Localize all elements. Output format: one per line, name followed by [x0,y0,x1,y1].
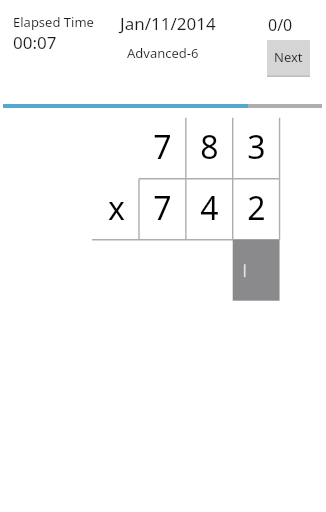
staticText: x [108,186,125,230]
staticText: Elapsed Time [13,13,94,31]
staticText: Advanced-6 [127,44,199,62]
button[interactable]: 3 [233,116,280,177]
button[interactable]: 8 [186,116,233,177]
button[interactable]: 2 [233,177,280,238]
staticText: 2 [247,186,266,230]
staticText: 4 [200,186,219,230]
staticText: 7 [153,186,172,230]
staticText: Jan/11/2014 [120,12,216,35]
staticText: 00:07 [13,31,57,54]
staticText: 0/0 [268,14,293,36]
button[interactable]: 4 [186,177,233,238]
button[interactable]: 7 [139,177,186,238]
staticText: 7 [153,125,172,169]
staticText: Next [274,48,303,66]
staticText: 3 [247,125,266,169]
button[interactable]: Next [267,40,310,77]
button[interactable]: 7 [139,116,186,177]
staticText: 8 [200,125,219,169]
